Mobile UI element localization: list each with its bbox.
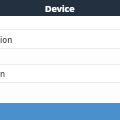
button[interactable]: ion	[0, 30, 120, 48]
staticText: n	[0, 68, 6, 79]
button[interactable]: Device	[0, 0, 120, 16]
staticText: Device	[45, 2, 75, 14]
staticText: ion	[0, 34, 13, 45]
button[interactable]: n	[0, 65, 120, 82]
